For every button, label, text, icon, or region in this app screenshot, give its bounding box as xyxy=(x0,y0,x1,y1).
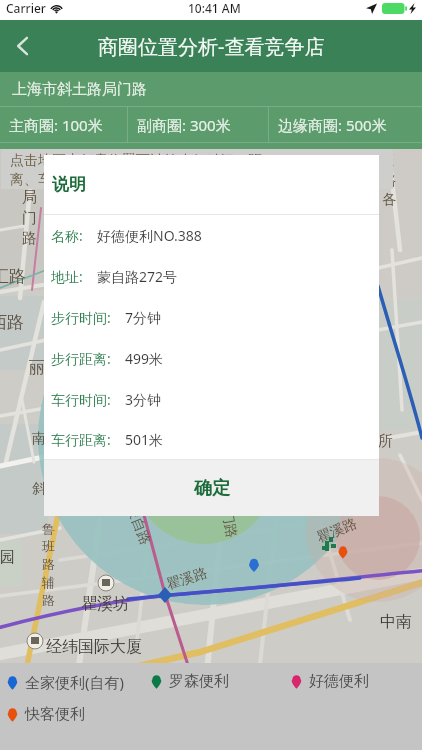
staticText: 中南 xyxy=(380,612,412,632)
button[interactable]: 边缘商圈: 500米 xyxy=(269,107,422,142)
staticText: 园 xyxy=(0,548,15,567)
button[interactable]: 主商圈: 100米 xyxy=(0,107,127,142)
staticText: 蒙自路272号 xyxy=(97,267,178,286)
staticText: 3分钟 xyxy=(125,390,162,409)
staticText: 上海市斜土路局门路 xyxy=(12,80,147,99)
staticText: 副商圈: 300米 xyxy=(137,115,231,135)
staticText: 西路 xyxy=(0,312,24,333)
staticText: 丽 xyxy=(29,358,45,378)
staticText: Carrier xyxy=(6,0,46,16)
staticText: 局 门 路 xyxy=(22,188,37,248)
button[interactable]: 确定 xyxy=(44,460,379,516)
staticText: 主商圈: 100米 xyxy=(9,115,103,135)
staticText: 瞿溪路 xyxy=(314,515,360,547)
staticText: 蒙自路 xyxy=(122,502,154,548)
staticText: 快客便利 xyxy=(25,705,85,724)
button[interactable]: 全家便利(自有) xyxy=(7,672,125,692)
staticText: 南 xyxy=(32,430,46,448)
staticText: 经纬国际大厦 xyxy=(46,637,142,657)
staticText: 全家便利(自有) xyxy=(25,672,125,692)
staticText: 501米 xyxy=(125,430,164,449)
staticText: 所 xyxy=(378,432,393,451)
staticText: 汇路 xyxy=(0,266,26,287)
button[interactable]: 好德便利 xyxy=(291,672,369,691)
staticText: 离、车行时间、距离 xyxy=(10,171,136,189)
button[interactable]: 罗森便利 xyxy=(151,672,229,691)
staticText: 好德便利 xyxy=(309,672,369,691)
staticText: 罗森便利 xyxy=(169,672,229,691)
staticText: 点击地图上任意位置可计算步行时间、距 xyxy=(10,152,262,170)
staticText: 车行距离: xyxy=(51,430,111,449)
staticText: 步行距离: xyxy=(51,349,111,368)
staticText: 瞿溪坊 xyxy=(81,594,129,614)
staticText: 地址: xyxy=(51,267,83,286)
staticText: 鲁 班 路 辅 路 xyxy=(42,521,55,609)
staticText: 10:41 AM xyxy=(188,0,241,16)
staticText: 车行时间: xyxy=(51,390,111,409)
button[interactable]: Back xyxy=(0,20,46,72)
staticText: 斜 xyxy=(32,480,46,498)
staticText: 门路 xyxy=(218,509,240,539)
staticText: 499米 xyxy=(125,349,164,368)
staticText: 瞿溪路 xyxy=(164,564,210,594)
staticText: 步行时间: xyxy=(51,308,111,327)
staticText: 边缘商圈: 500米 xyxy=(278,115,387,135)
staticText: 名称: xyxy=(51,226,83,245)
staticText: 确定 xyxy=(194,477,230,500)
button[interactable]: 快客便利 xyxy=(7,705,85,724)
staticText: 距 xyxy=(380,152,394,170)
staticText: 7分钟 xyxy=(125,308,162,327)
button[interactable]: 副商圈: 300米 xyxy=(128,107,268,142)
staticText: 好德便利NO.388 xyxy=(97,226,202,245)
staticText: 说明 xyxy=(52,174,86,195)
staticText: 路 各 xyxy=(382,172,396,208)
staticText: 商圈位置分析-查看竞争店 xyxy=(98,33,325,60)
